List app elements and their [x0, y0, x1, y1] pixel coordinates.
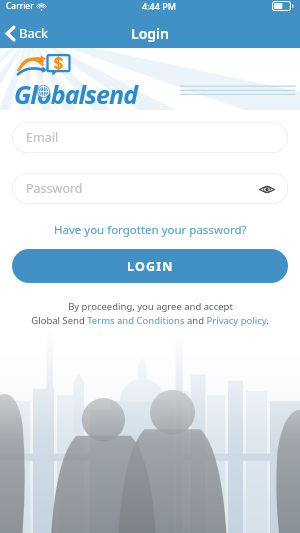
button[interactable]: LOGIN — [12, 249, 288, 283]
staticText: Globalsend — [14, 77, 138, 111]
staticText: 4:44 PM — [142, 0, 176, 12]
button[interactable]: Back — [0, 20, 56, 46]
button[interactable]: Global Send Terms and Conditions and Pri… — [31, 314, 269, 327]
staticText: Carrier — [6, 0, 34, 12]
staticText: Back — [19, 24, 48, 42]
staticText: LOGIN — [127, 258, 174, 275]
button[interactable]: Email — [12, 122, 288, 153]
staticText: Login — [131, 24, 169, 43]
button[interactable]: Show password — [256, 178, 278, 200]
button[interactable]: Have you forgotten your password? — [0, 222, 300, 238]
staticText: Password — [26, 180, 83, 197]
button[interactable]: Password — [12, 173, 288, 204]
staticText: Email — [26, 129, 59, 146]
staticText: By proceeding, you agree and accept — [68, 300, 233, 313]
staticText: Global Send Terms and Conditions and Pri… — [31, 314, 269, 327]
staticText: Have you forgotten your password? — [54, 222, 247, 238]
